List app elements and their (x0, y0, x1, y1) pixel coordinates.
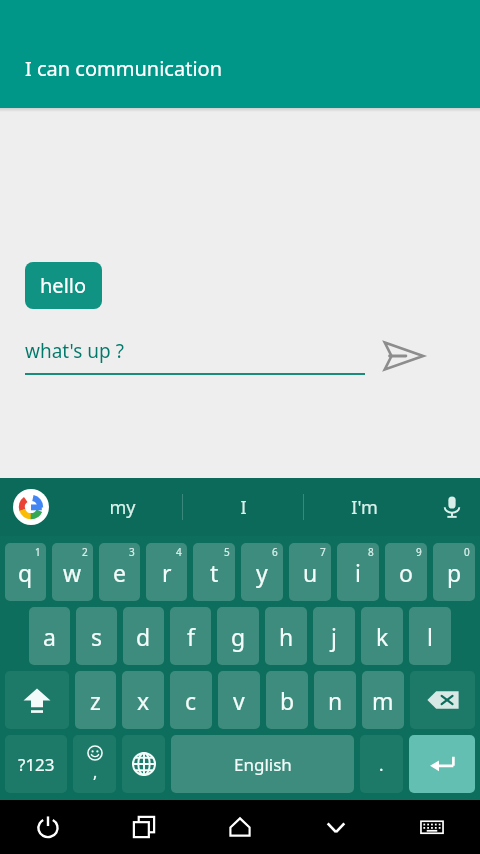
staticText: k (376, 621, 389, 652)
button[interactable]: Google (0, 478, 62, 536)
staticText: 8 (368, 545, 374, 559)
button[interactable]: m (362, 671, 404, 729)
button[interactable]: my (62, 478, 182, 536)
staticText: v (233, 685, 245, 716)
staticText: I can communication (25, 55, 222, 82)
button[interactable]: r (146, 543, 187, 601)
button[interactable]: t (193, 543, 235, 601)
button[interactable]: Backspace (410, 671, 475, 729)
button[interactable]: I'm (304, 478, 424, 536)
staticText: o (399, 557, 413, 588)
button[interactable]: ?123 (5, 735, 67, 793)
button[interactable]: k (361, 607, 403, 665)
staticText: c (185, 685, 197, 716)
button[interactable]: Voice input (424, 478, 480, 536)
staticText: j (331, 621, 337, 652)
staticText: z (90, 685, 101, 716)
staticText: 7 (320, 545, 326, 559)
button[interactable]: w (52, 543, 93, 601)
button[interactable]: s (76, 607, 117, 665)
staticText: f (187, 621, 195, 652)
button[interactable]: c (170, 671, 212, 729)
staticText: n (328, 685, 343, 716)
button[interactable]: a (29, 607, 70, 665)
staticText: I (240, 495, 247, 520)
button[interactable]: Hide keyboard (288, 800, 384, 854)
button[interactable]: b (266, 671, 308, 729)
button[interactable]: e (99, 543, 140, 601)
staticText: l (427, 621, 433, 652)
button[interactable]: Power (0, 800, 96, 854)
button[interactable]: Send (375, 328, 431, 384)
staticText: r (162, 557, 172, 588)
button[interactable]: English (171, 735, 354, 793)
staticText: 5 (224, 545, 230, 559)
button[interactable]: z (75, 671, 116, 729)
button[interactable]: Recents (96, 800, 192, 854)
staticText: , (93, 761, 98, 783)
button[interactable]: l (409, 607, 451, 665)
staticText: 9 (416, 545, 422, 559)
staticText: 6 (272, 545, 278, 559)
staticText: x (137, 685, 150, 716)
button[interactable]: I (183, 478, 303, 536)
staticText: 0 (464, 545, 470, 559)
button[interactable]: i (337, 543, 379, 601)
staticText: p (447, 557, 462, 588)
button[interactable]: x (122, 671, 164, 729)
button[interactable]: j (313, 607, 355, 665)
staticText: 4 (176, 545, 182, 559)
button[interactable]: u (289, 543, 331, 601)
staticText: e (113, 557, 126, 588)
staticText: . (379, 753, 384, 776)
staticText: u (303, 557, 318, 588)
staticText: q (18, 557, 33, 588)
button[interactable]: n (314, 671, 356, 729)
staticText: h (279, 621, 294, 652)
staticText: English (234, 753, 292, 776)
button[interactable]: d (123, 607, 164, 665)
button[interactable]: y (241, 543, 283, 601)
button[interactable]: hello (25, 262, 102, 309)
staticText: hello (40, 272, 87, 299)
staticText: 2 (82, 545, 88, 559)
staticText: 3 (129, 545, 135, 559)
staticText: 1 (35, 545, 41, 559)
button[interactable]: Shift (5, 671, 69, 729)
button[interactable]: Enter (409, 735, 475, 793)
button[interactable]: Emoji and comma (73, 735, 116, 793)
staticText: g (231, 621, 246, 652)
button[interactable]: Home (192, 800, 288, 854)
staticText: I'm (351, 495, 378, 520)
staticText: i (355, 557, 361, 588)
button[interactable]: g (217, 607, 259, 665)
staticText: b (280, 685, 295, 716)
staticText: what's up ? (25, 338, 124, 364)
button[interactable]: f (170, 607, 211, 665)
button[interactable]: . (360, 735, 403, 793)
staticText: y (256, 557, 268, 588)
staticText: s (91, 621, 103, 652)
button[interactable]: o (385, 543, 427, 601)
button[interactable]: Keyboard (384, 800, 480, 854)
button[interactable]: Change language (122, 735, 165, 793)
button[interactable]: v (218, 671, 260, 729)
button[interactable]: p (433, 543, 475, 601)
staticText: a (43, 621, 56, 652)
button[interactable]: h (265, 607, 307, 665)
staticText: w (63, 557, 82, 588)
staticText: ?123 (18, 753, 55, 776)
staticText: my (109, 495, 136, 520)
button[interactable]: q (5, 543, 46, 601)
staticText: t (210, 557, 219, 588)
staticText: m (372, 685, 394, 716)
staticText: d (136, 621, 151, 652)
